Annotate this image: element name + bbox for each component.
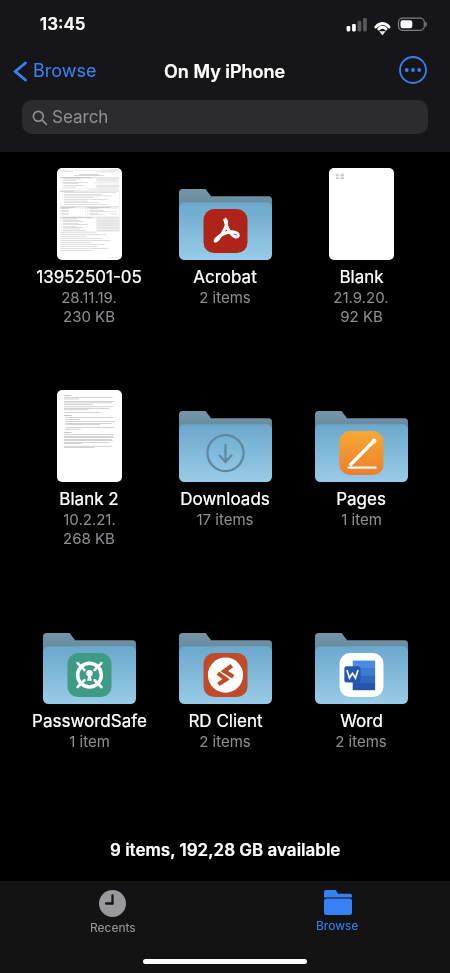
button[interactable]: Word (293, 596, 429, 796)
staticText: 21.9.20. (333, 288, 389, 306)
staticText: Browse (316, 918, 359, 933)
staticText: 13:45 (40, 14, 86, 35)
staticText: Pages (336, 489, 386, 510)
staticText: On My iPhone (164, 61, 286, 83)
staticText: Blank (339, 267, 384, 288)
staticText: 2 items (199, 288, 251, 306)
staticText: Downloads (180, 489, 270, 510)
button[interactable]: Search (22, 100, 428, 134)
staticText: RD Client (188, 711, 263, 732)
button[interactable]: 13952501-05 (21, 152, 157, 352)
staticText: Word (340, 711, 383, 732)
staticText: 2 items (335, 732, 387, 750)
button[interactable]: Browse (10, 56, 101, 86)
staticText: Browse (33, 60, 97, 82)
button[interactable]: Acrobat (157, 152, 293, 352)
staticText: 1 item (341, 510, 382, 528)
button[interactable]: Blank 2 (21, 374, 157, 574)
staticText: 13952501-05 (36, 267, 142, 288)
staticText: 17 items (196, 510, 254, 528)
button[interactable]: PasswordSafe (21, 596, 157, 796)
staticText: Search (52, 107, 109, 128)
button[interactable]: Recents (74, 890, 151, 935)
staticText: 2 items (199, 732, 251, 750)
staticText: 28.11.19. (61, 288, 117, 306)
staticText: 92 KB (340, 307, 383, 325)
button[interactable]: Browse (299, 890, 376, 933)
staticText: 230 KB (63, 307, 115, 325)
button[interactable]: Downloads (157, 374, 293, 574)
staticText: 268 KB (63, 529, 115, 547)
staticText: 9 items, 192,28 GB available (110, 840, 341, 861)
staticText: 10.2.21. (63, 510, 116, 528)
staticText: Recents (90, 920, 136, 935)
staticText: 1 item (69, 732, 110, 750)
staticText: PasswordSafe (32, 711, 147, 732)
button[interactable]: Blank (293, 152, 429, 352)
staticText: Blank 2 (59, 489, 119, 510)
button[interactable]: Pages (293, 374, 429, 574)
button[interactable]: More options (399, 56, 427, 84)
button[interactable]: RD Client (157, 596, 293, 796)
staticText: Acrobat (193, 267, 257, 288)
